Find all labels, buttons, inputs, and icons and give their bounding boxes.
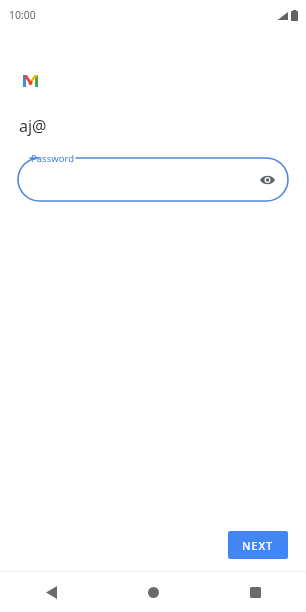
button[interactable]: NEXT bbox=[228, 531, 288, 559]
staticText: aj@ bbox=[19, 115, 47, 137]
staticText: Password bbox=[31, 152, 74, 165]
button[interactable]: Password bbox=[18, 151, 288, 203]
button[interactable]: Show password bbox=[256, 169, 278, 191]
staticText: 10:00 bbox=[9, 8, 36, 22]
button[interactable]: Back bbox=[0, 572, 102, 612]
button[interactable]: Home bbox=[102, 572, 204, 612]
staticText: NEXT bbox=[242, 538, 274, 553]
button[interactable]: Recent apps bbox=[204, 572, 306, 612]
